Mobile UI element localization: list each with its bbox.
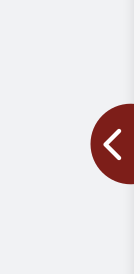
button[interactable]: Back [90, 104, 140, 184]
